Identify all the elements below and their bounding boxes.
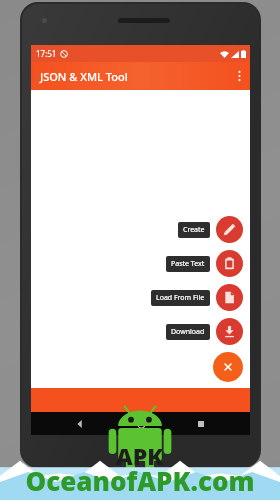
button[interactable]: More options: [228, 65, 250, 87]
button[interactable]: Recent apps: [190, 413, 212, 435]
staticText: JSON & XML Tool: [40, 69, 128, 84]
staticText: OceanofAPK.com: [0, 463, 280, 498]
button[interactable]: Home: [130, 413, 152, 435]
button[interactable]: Back: [69, 413, 91, 435]
button[interactable]: Paste Text: [166, 250, 243, 277]
staticText: APK: [116, 440, 164, 471]
staticText: Download: [171, 327, 205, 337]
staticText: 17:51: [36, 48, 57, 59]
button[interactable]: Download: [166, 318, 243, 345]
button[interactable]: Close menu: [213, 352, 243, 382]
staticText: Create: [183, 225, 205, 235]
staticText: Load From File: [156, 293, 205, 303]
button[interactable]: Load From File: [151, 284, 243, 311]
button[interactable]: Create: [178, 216, 243, 243]
staticText: Paste Text: [171, 259, 205, 269]
